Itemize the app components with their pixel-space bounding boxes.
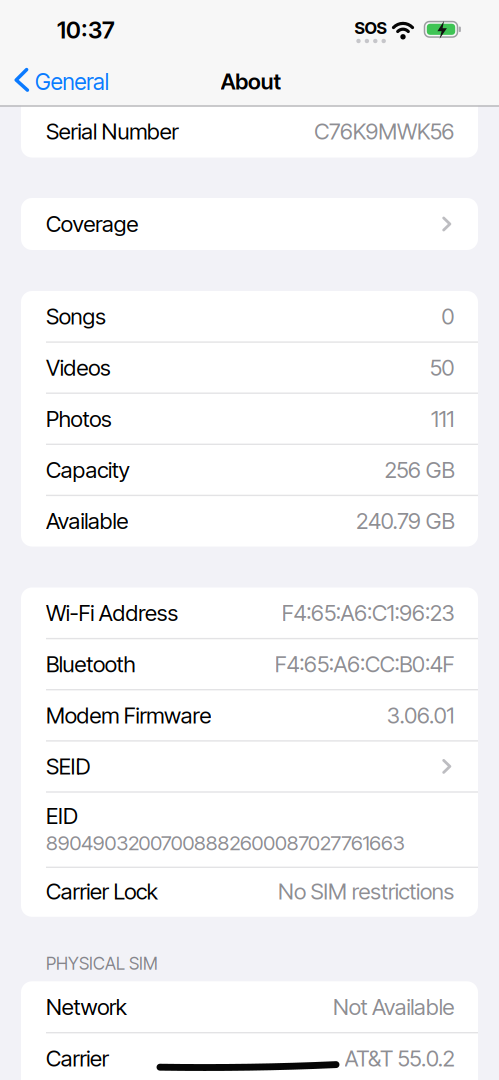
staticText: EID — [46, 802, 78, 829]
staticText: 50 — [430, 354, 454, 381]
staticText: AT&T 55.0.2 — [344, 1045, 454, 1072]
staticText: Carrier Lock — [46, 878, 158, 905]
staticText: 111 — [431, 405, 454, 432]
staticText: Capacity — [46, 456, 130, 483]
staticText: Photos — [46, 405, 112, 432]
staticText: PHYSICAL SIM — [46, 953, 158, 974]
staticText: 0 — [441, 303, 454, 330]
staticText: C76K9MWK56 — [314, 118, 454, 145]
staticText: Carrier — [46, 1045, 109, 1072]
staticText: 89049032007008882600087027761663 — [46, 830, 405, 855]
staticText: 3.06.01 — [387, 702, 454, 729]
staticText: Network — [46, 993, 127, 1020]
staticText: Modem Firmware — [46, 702, 211, 729]
staticText: Songs — [46, 303, 106, 330]
staticText: SOS — [354, 18, 386, 38]
button[interactable]: Back to General — [12, 56, 122, 106]
staticText: F4:65:A6:CC:B0:4F — [275, 651, 454, 678]
button[interactable]: SEID — [21, 741, 478, 792]
button[interactable]: Coverage — [21, 198, 478, 249]
staticText: SEID — [46, 753, 90, 780]
staticText: About — [221, 68, 281, 95]
staticText: Videos — [46, 354, 111, 381]
staticText: Coverage — [46, 210, 139, 237]
staticText: Bluetooth — [46, 651, 135, 678]
staticText: Serial Number — [46, 118, 179, 145]
staticText: 240.79 GB — [356, 507, 454, 534]
staticText: F4:65:A6:C1:96:23 — [282, 599, 454, 626]
staticText: Not Available — [333, 993, 454, 1020]
staticText: No SIM restrictions — [278, 878, 454, 905]
staticText: 256 GB — [384, 456, 454, 483]
staticText: Available — [46, 507, 128, 534]
staticText: General — [35, 68, 109, 95]
staticText: 10:37 — [57, 16, 115, 44]
staticText: Wi-Fi Address — [46, 599, 179, 626]
